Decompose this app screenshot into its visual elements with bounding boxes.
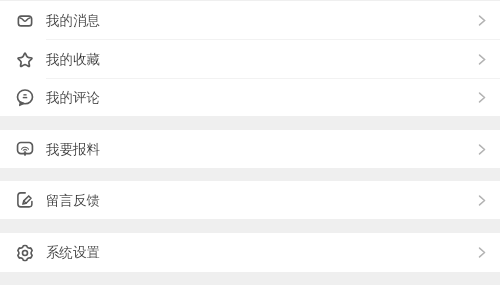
- staticText: 我的消息: [46, 12, 100, 29]
- other: Submit a tip: [15, 139, 35, 159]
- staticText: 留言反馈: [46, 192, 100, 209]
- button[interactable]: Settings: [0, 233, 500, 272]
- other: Open 留言反馈: [476, 195, 487, 206]
- other: Open 我的消息: [476, 15, 487, 26]
- other: Settings: [15, 243, 35, 263]
- other: My comments: [15, 88, 35, 108]
- other: Open 我的评论: [476, 92, 487, 103]
- other: Feedback: [15, 190, 35, 210]
- other: Open 我要报料: [476, 144, 487, 155]
- other: My favourites: [15, 50, 35, 70]
- button[interactable]: My comments: [0, 79, 500, 116]
- staticText: 我要报料: [46, 141, 100, 158]
- staticText: 我的收藏: [46, 51, 100, 68]
- staticText: 系统设置: [46, 244, 100, 261]
- other: Open 系统设置: [476, 247, 487, 258]
- button[interactable]: My messages: [0, 1, 500, 40]
- button[interactable]: Feedback: [0, 181, 500, 219]
- button[interactable]: Submit a tip: [0, 130, 500, 168]
- other: My messages: [15, 11, 35, 31]
- button[interactable]: My favourites: [0, 40, 500, 79]
- other: Open 我的收藏: [476, 54, 487, 65]
- staticText: 我的评论: [46, 89, 100, 106]
